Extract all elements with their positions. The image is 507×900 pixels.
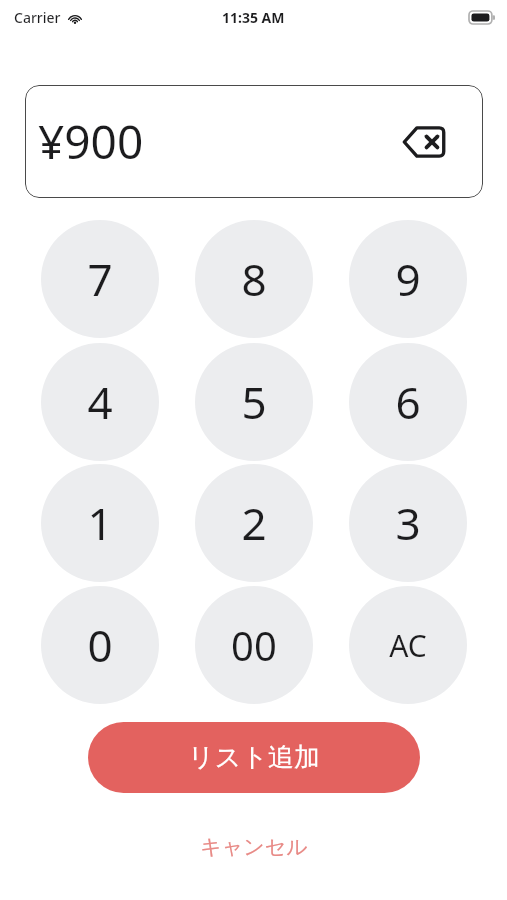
button[interactable]: 8 [195,220,313,338]
staticText: AC [389,625,427,666]
staticText: 6 [395,372,421,432]
button[interactable]: 5 [195,343,313,461]
staticText: Carrier [14,8,61,27]
button[interactable]: 00 [195,586,313,704]
button[interactable]: 0 [41,586,159,704]
staticText: 9 [395,249,421,309]
staticText: 1 [87,493,113,553]
staticText: 0 [87,615,113,675]
staticText: リスト追加 [188,741,320,774]
staticText: 00 [231,618,277,672]
button[interactable]: リスト追加 [88,722,420,793]
staticText: キャンセル [200,834,308,860]
button[interactable]: 6 [349,343,467,461]
staticText: 2 [241,493,267,553]
staticText: 8 [241,249,267,309]
button[interactable]: キャンセル [0,825,507,869]
button[interactable]: Backspace [401,119,447,165]
staticText: 3 [395,493,421,553]
staticText: 7 [87,249,113,309]
button[interactable]: 7 [41,220,159,338]
staticText: 5 [241,372,267,432]
button[interactable]: 1 [41,464,159,582]
button[interactable]: 3 [349,464,467,582]
button[interactable]: AC [349,586,467,704]
button[interactable]: 4 [41,343,159,461]
staticText: 11:35 AM [222,8,285,27]
staticText: ¥900 [38,110,144,173]
staticText: 4 [87,372,113,432]
button[interactable]: 2 [195,464,313,582]
button[interactable]: 9 [349,220,467,338]
button[interactable]: ¥900 [25,85,483,198]
